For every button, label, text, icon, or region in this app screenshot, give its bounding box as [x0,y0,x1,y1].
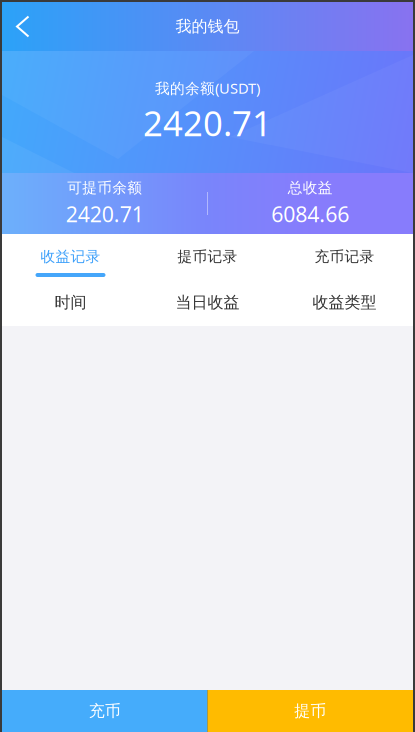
button[interactable]: 提币 [207,690,413,732]
staticText: 可提币余额 [67,179,142,197]
staticText: 收益类型 [312,293,376,312]
staticText: 我的钱包 [175,17,239,36]
button[interactable]: 充币记录 [276,234,413,279]
staticText: 充币 [89,701,121,721]
staticText: 提币 [294,701,326,721]
staticText: 提币记录 [177,247,237,265]
staticText: 时间 [54,293,86,312]
staticText: 2420.71 [66,200,144,228]
button[interactable]: Back [2,2,44,51]
button[interactable]: 收益记录 [2,234,139,279]
button[interactable]: 充币 [2,690,207,732]
staticText: 2420.71 [143,100,272,146]
staticText: 我的余额(USDT) [155,78,260,98]
staticText: 总收益 [288,179,333,197]
staticText: 6084.66 [271,200,349,228]
staticText: 当日收益 [175,293,239,312]
staticText: 收益记录 [40,247,100,265]
button[interactable]: 提币记录 [139,234,276,279]
staticText: 充币记录 [314,247,374,265]
